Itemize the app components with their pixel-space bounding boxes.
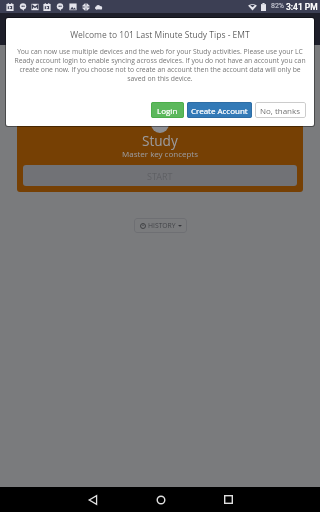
staticText: Login [157,105,178,116]
staticText: Welcome to 101 Last Minute Study Tips - … [6,29,314,41]
button[interactable]: Create Account [187,102,252,118]
button[interactable]: START [23,165,297,186]
staticText: 3:41 PM [286,2,318,12]
staticText: Master key concepts [122,148,199,159]
button[interactable]: Back [79,487,107,512]
button[interactable]: Login [151,102,184,118]
button[interactable]: HISTORY [134,218,187,233]
button[interactable]: Home [147,487,175,512]
staticText: 82% [271,2,284,10]
staticText: Study [142,131,178,150]
staticText: HISTORY [148,221,176,230]
button[interactable]: Study [17,108,303,192]
staticText: No, thanks [260,105,301,116]
button[interactable]: No, thanks [255,102,306,118]
staticText: Create Account [191,105,248,116]
staticText: START [147,170,173,182]
staticText: You can now use multiple devices and the… [13,47,307,83]
button[interactable]: Recent apps [214,487,242,512]
